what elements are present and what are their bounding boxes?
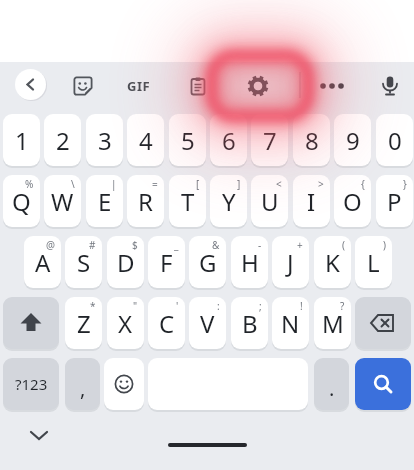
button[interactable]: 3 bbox=[86, 114, 123, 166]
button[interactable] bbox=[316, 72, 348, 100]
button[interactable]: N bbox=[272, 297, 309, 349]
staticText: 2 bbox=[56, 124, 70, 157]
button[interactable]: ?123 bbox=[3, 358, 59, 410]
button[interactable]: W bbox=[44, 175, 81, 227]
staticText: N bbox=[281, 307, 300, 340]
button[interactable]: , bbox=[65, 358, 100, 410]
staticText: ] bbox=[237, 177, 241, 191]
button[interactable] bbox=[184, 72, 212, 100]
button[interactable] bbox=[3, 297, 59, 349]
staticText: < bbox=[276, 177, 282, 191]
staticText: ! bbox=[300, 299, 303, 313]
button[interactable]: B bbox=[231, 297, 268, 349]
button[interactable]: 9 bbox=[334, 114, 371, 166]
button[interactable]: Y bbox=[210, 175, 247, 227]
staticText: _ bbox=[174, 238, 179, 252]
button[interactable]: A bbox=[24, 236, 61, 288]
staticText: ( bbox=[342, 238, 345, 252]
button[interactable]: 5 bbox=[169, 114, 206, 166]
button[interactable] bbox=[104, 358, 144, 410]
staticText: = bbox=[152, 177, 158, 191]
button[interactable]: J bbox=[272, 236, 309, 288]
staticText: 7 bbox=[263, 124, 277, 157]
button[interactable]: 7 bbox=[251, 114, 288, 166]
staticText: ? bbox=[340, 299, 345, 313]
button[interactable]: I bbox=[293, 175, 330, 227]
button[interactable]: 0 bbox=[376, 114, 413, 166]
button[interactable]: M bbox=[314, 297, 351, 349]
staticText: 5 bbox=[181, 124, 195, 157]
button[interactable]: C bbox=[148, 297, 185, 349]
button[interactable]: D bbox=[107, 236, 144, 288]
button[interactable]: O bbox=[334, 175, 371, 227]
staticText: " bbox=[133, 299, 138, 313]
button[interactable]: S bbox=[65, 236, 102, 288]
staticText: R bbox=[138, 185, 153, 218]
button[interactable] bbox=[69, 72, 97, 100]
staticText: T bbox=[181, 185, 195, 218]
staticText: & bbox=[212, 238, 220, 252]
staticText: H bbox=[241, 246, 259, 279]
staticText: V bbox=[200, 307, 215, 340]
staticText: @ bbox=[46, 238, 55, 252]
staticText: Z bbox=[77, 307, 91, 340]
staticText: C bbox=[159, 307, 175, 340]
staticText: A bbox=[35, 246, 51, 279]
staticText: L bbox=[367, 246, 380, 279]
staticText: K bbox=[325, 246, 340, 279]
button[interactable]: K bbox=[314, 236, 351, 288]
staticText: ?123 bbox=[15, 374, 48, 394]
button[interactable] bbox=[376, 72, 404, 100]
button[interactable]: L bbox=[355, 236, 392, 288]
staticText: > bbox=[318, 177, 324, 191]
button[interactable]: T bbox=[169, 175, 206, 227]
button[interactable]: E bbox=[86, 175, 123, 227]
staticText: J bbox=[287, 246, 294, 279]
button[interactable] bbox=[244, 72, 272, 100]
button[interactable]: 4 bbox=[127, 114, 164, 166]
staticText: | bbox=[111, 177, 117, 191]
button[interactable]: 6 bbox=[210, 114, 247, 166]
staticText: ; bbox=[259, 299, 262, 313]
staticText: . bbox=[329, 375, 335, 402]
button[interactable]: V bbox=[189, 297, 226, 349]
staticText: 0 bbox=[388, 124, 402, 157]
button[interactable]: G bbox=[189, 236, 226, 288]
button[interactable]: . bbox=[314, 358, 349, 410]
staticText: ) bbox=[383, 238, 386, 252]
staticText: , bbox=[80, 375, 86, 402]
staticText: Q bbox=[12, 185, 31, 218]
button[interactable] bbox=[15, 69, 46, 100]
button[interactable]: F bbox=[148, 236, 185, 288]
staticText: M bbox=[322, 307, 344, 340]
staticText: Y bbox=[222, 185, 236, 218]
button[interactable]: U bbox=[251, 175, 288, 227]
staticText: 8 bbox=[305, 124, 319, 157]
staticText: + bbox=[297, 238, 303, 252]
staticText: ' bbox=[176, 299, 179, 313]
button[interactable]: 1 bbox=[3, 114, 40, 166]
button[interactable]: Z bbox=[65, 297, 102, 349]
staticText: X bbox=[118, 307, 133, 340]
button[interactable] bbox=[355, 358, 411, 410]
button[interactable]: Q bbox=[3, 175, 40, 227]
staticText: F bbox=[160, 246, 173, 279]
staticText: \ bbox=[71, 177, 75, 191]
button[interactable]: 8 bbox=[293, 114, 330, 166]
staticText: 9 bbox=[346, 124, 360, 157]
staticText: 3 bbox=[98, 124, 112, 157]
staticText: 1 bbox=[15, 124, 29, 157]
staticText: } bbox=[403, 177, 407, 191]
button[interactable]: P bbox=[376, 175, 413, 227]
button[interactable]: 2 bbox=[44, 114, 81, 166]
button[interactable]: H bbox=[231, 236, 268, 288]
staticText: I bbox=[307, 185, 316, 218]
button[interactable]: X bbox=[107, 297, 144, 349]
staticText: E bbox=[98, 185, 112, 218]
button[interactable]: GIF bbox=[117, 72, 161, 100]
button[interactable]: R bbox=[127, 175, 164, 227]
staticText: [ bbox=[196, 177, 200, 191]
staticText: : bbox=[217, 299, 220, 313]
button[interactable] bbox=[355, 297, 411, 349]
